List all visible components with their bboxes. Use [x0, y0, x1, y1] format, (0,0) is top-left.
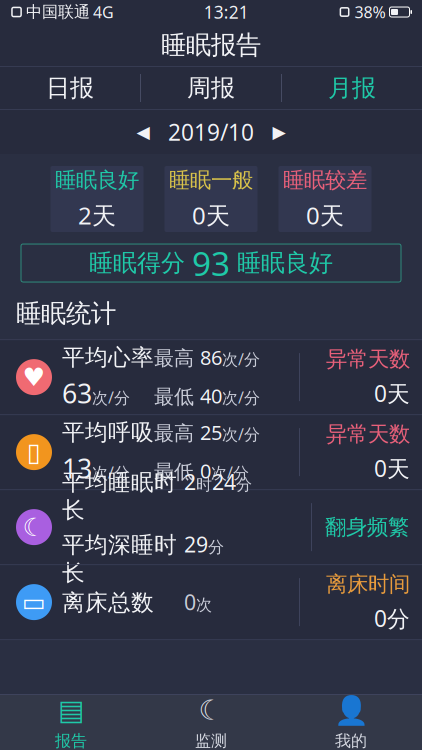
- staticText: 最高: [154, 421, 200, 446]
- staticText: 次/分: [222, 423, 260, 445]
- staticText: 睡眠良好: [237, 248, 333, 278]
- staticText: 最低: [154, 459, 200, 484]
- button[interactable]: ☾: [141, 695, 281, 750]
- staticText: 睡眠良好: [55, 167, 139, 193]
- staticText: 分: [236, 475, 252, 494]
- staticText: 次/分: [92, 387, 130, 408]
- staticText: 日报: [46, 73, 94, 103]
- staticText: 月报: [328, 73, 376, 103]
- staticText: 29: [184, 530, 208, 558]
- staticText: 睡眠得分: [89, 248, 185, 278]
- button[interactable]: ♥: [0, 340, 422, 414]
- staticText: 我的: [335, 731, 367, 750]
- staticText: 0天: [192, 199, 230, 231]
- button[interactable]: ▯: [0, 415, 422, 489]
- staticText: 0分: [374, 603, 410, 633]
- staticText: 24: [212, 467, 236, 496]
- staticText: 2天: [78, 199, 116, 231]
- staticText: 40: [200, 382, 222, 409]
- staticText: 👤: [333, 694, 368, 726]
- staticText: 0天: [374, 453, 410, 483]
- staticText: ◀: [136, 122, 149, 142]
- staticText: 分: [208, 537, 224, 557]
- staticText: 睡眠较差: [283, 167, 367, 193]
- staticText: 次/分: [211, 462, 249, 483]
- staticText: 离床总数: [62, 589, 154, 616]
- staticText: 38%: [354, 1, 385, 23]
- staticText: 时: [196, 475, 212, 494]
- staticText: 平均深睡时长: [62, 531, 177, 587]
- button[interactable]: ▭: [0, 565, 422, 639]
- staticText: 平均睡眠时长: [62, 468, 177, 524]
- staticText: 睡眠统计: [16, 298, 116, 329]
- staticText: ☾: [22, 513, 45, 541]
- staticText: ▤: [58, 694, 84, 726]
- staticText: 次/分: [92, 462, 130, 483]
- button[interactable]: 下一月: [266, 117, 292, 147]
- button[interactable]: ▤: [1, 695, 141, 750]
- staticText: 86: [200, 344, 222, 370]
- staticText: 最高: [154, 346, 200, 371]
- button[interactable]: 👤: [281, 695, 421, 750]
- staticText: 睡眠一般: [169, 167, 253, 193]
- staticText: 25: [200, 419, 222, 445]
- staticText: 0天: [306, 199, 344, 231]
- staticText: 平均呼吸: [62, 418, 154, 446]
- staticText: 2019/10: [168, 117, 254, 147]
- staticText: 翻身频繁: [325, 514, 409, 540]
- button[interactable]: 周报: [141, 66, 281, 110]
- staticText: 周报: [187, 73, 235, 103]
- button[interactable]: 上一月: [130, 117, 156, 147]
- staticText: 次/分: [222, 348, 260, 370]
- button[interactable]: 月报: [282, 66, 422, 110]
- staticText: 睡眠报告: [161, 29, 261, 60]
- staticText: ▶: [272, 122, 285, 142]
- staticText: 4G: [93, 1, 114, 23]
- staticText: 报告: [55, 731, 87, 750]
- staticText: 平均心率: [62, 343, 154, 371]
- staticText: 中国联通: [26, 2, 90, 22]
- staticText: 次: [196, 595, 212, 615]
- staticText: 13:21: [204, 0, 249, 23]
- staticText: 最低: [154, 384, 200, 409]
- staticText: ▯: [27, 438, 41, 466]
- staticText: 2: [184, 467, 196, 496]
- button[interactable]: ☾: [0, 490, 422, 564]
- staticText: 0天: [374, 378, 410, 408]
- staticText: ▭: [22, 588, 46, 616]
- staticText: 异常天数: [326, 346, 410, 372]
- staticText: 异常天数: [326, 421, 410, 447]
- staticText: 13: [62, 450, 92, 486]
- staticText: 0: [184, 588, 196, 616]
- staticText: 监测: [195, 731, 227, 750]
- staticText: ♥: [22, 363, 45, 391]
- staticText: ☾: [198, 694, 223, 726]
- staticText: 63: [62, 375, 92, 411]
- staticText: 93: [192, 241, 230, 285]
- button[interactable]: 日报: [0, 66, 140, 110]
- staticText: 离床时间: [326, 571, 410, 597]
- staticText: 0: [200, 457, 211, 484]
- staticText: 次/分: [222, 387, 260, 408]
